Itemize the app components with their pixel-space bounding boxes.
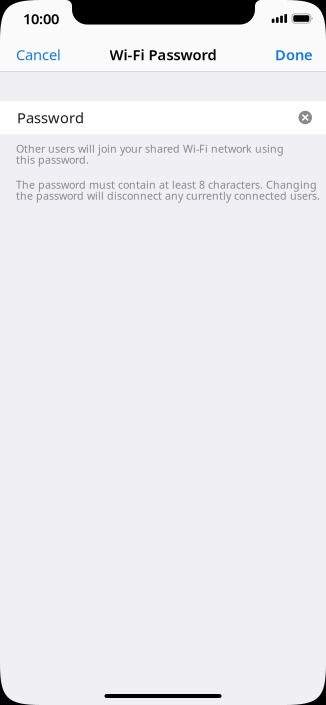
staticText: Other users will join your shared Wi-Fi … bbox=[16, 141, 284, 156]
staticText: 10:00 bbox=[23, 9, 59, 28]
staticText: Wi-Fi Password bbox=[109, 45, 216, 64]
staticText: The password must contain at least 8 cha… bbox=[16, 177, 317, 192]
button[interactable]: Password bbox=[0, 101, 290, 134]
staticText: the password will disconnect any current… bbox=[16, 188, 320, 203]
staticText: Password bbox=[17, 108, 84, 127]
button[interactable]: Cancel bbox=[0, 37, 71, 72]
staticText: this password. bbox=[16, 152, 89, 167]
staticText: Cancel bbox=[16, 45, 61, 64]
button[interactable]: Done bbox=[265, 37, 326, 72]
button[interactable]: Clear text bbox=[290, 101, 326, 134]
staticText: Done bbox=[275, 45, 313, 64]
